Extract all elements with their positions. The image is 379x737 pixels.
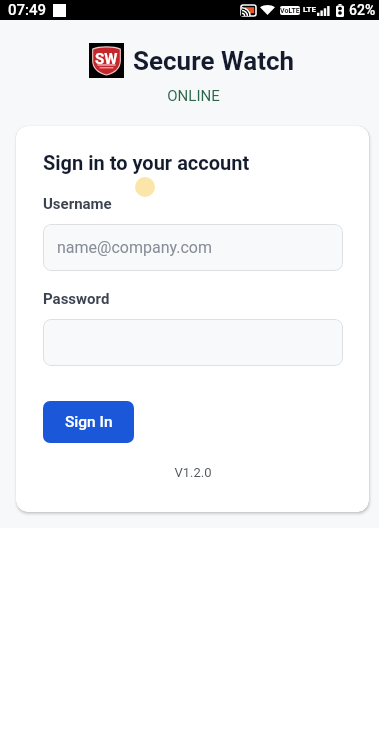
staticText: 62%: [349, 2, 376, 18]
staticText: LTE: [303, 5, 316, 14]
button[interactable]: Password input field: [43, 319, 343, 366]
staticText: Username: [43, 195, 112, 213]
staticText: 07:49: [8, 1, 47, 19]
staticText: Sign In: [65, 413, 113, 431]
staticText: VoLTE: [280, 7, 300, 15]
staticText: ONLINE: [8, 87, 379, 105]
staticText: name@company.com: [57, 238, 212, 257]
staticText: Sign in to your account: [43, 151, 250, 174]
staticText: Password: [43, 290, 110, 308]
staticText: Secure Watch: [133, 46, 295, 76]
staticText: SW: [95, 50, 118, 68]
staticText: V1.2.0: [43, 465, 343, 480]
button[interactable]: Sign In: [43, 401, 134, 443]
button[interactable]: Username input field: [43, 224, 343, 271]
